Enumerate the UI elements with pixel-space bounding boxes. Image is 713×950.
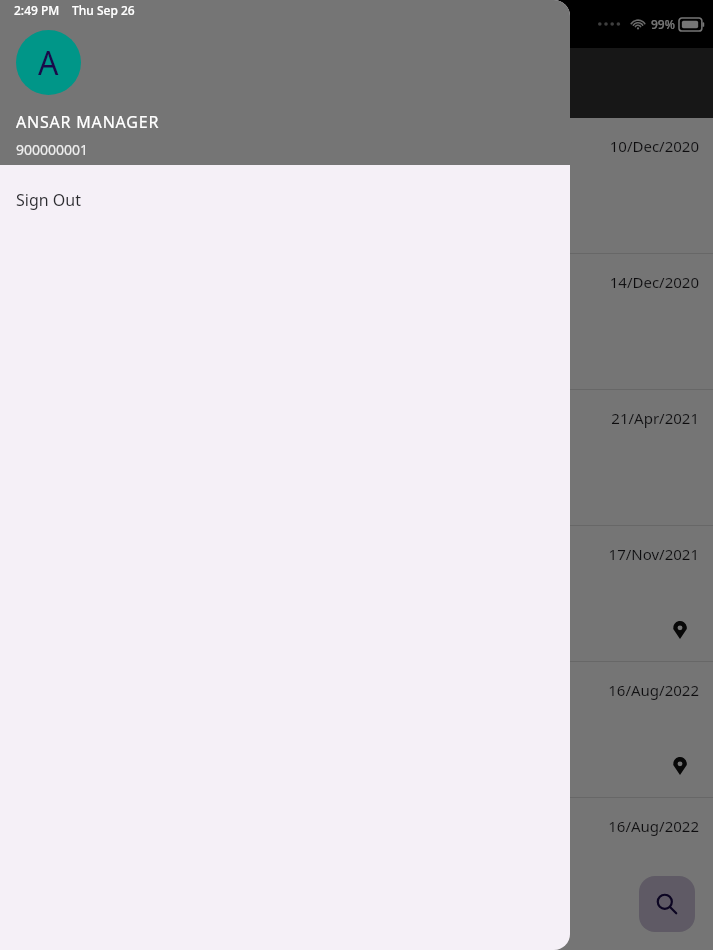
button[interactable]: Location [671, 757, 689, 775]
staticText: 99% [651, 16, 675, 32]
button[interactable] [0, 0, 713, 950]
button[interactable]: Location [671, 621, 689, 639]
button[interactable]: 16/Aug/2022 [0, 662, 713, 797]
button[interactable]: 14/Dec/2020 [0, 254, 713, 389]
staticText: 2:49 PM [14, 2, 60, 18]
staticText: A [38, 41, 59, 85]
staticText: 10/Dec/2020 [609, 136, 699, 156]
button[interactable]: 21/Apr/2021 [0, 390, 713, 525]
staticText: Sign Out [16, 189, 81, 211]
button[interactable]: 16/Aug/2022 [0, 798, 713, 933]
staticText: Thu Sep 26 [72, 2, 135, 18]
staticText: ANSAR MANAGER [16, 111, 160, 133]
button[interactable]: 10/Dec/2020 [0, 118, 713, 253]
button[interactable]: 17/Nov/2021 [0, 526, 713, 661]
staticText: 16/Aug/2022 [608, 680, 699, 700]
button[interactable]: Search [639, 876, 695, 932]
staticText: 16/Aug/2022 [608, 816, 699, 836]
button[interactable]: Sign Out [0, 165, 570, 235]
staticText: 14/Dec/2020 [609, 272, 699, 292]
staticText: 900000001 [16, 140, 89, 159]
staticText: 17/Nov/2021 [608, 544, 699, 564]
staticText: 21/Apr/2021 [611, 408, 699, 428]
